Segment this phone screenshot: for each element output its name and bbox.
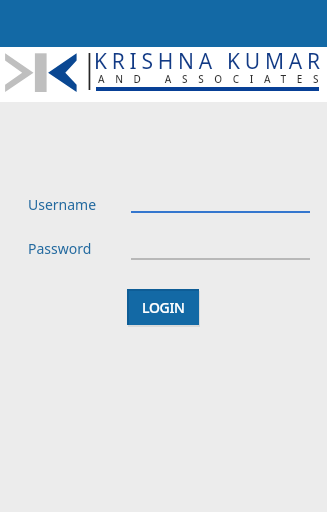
button[interactable]: Username (22, 190, 310, 220)
staticText: Password (28, 239, 92, 258)
staticText: LOGIN (142, 298, 185, 317)
staticText: AND ASSOCIATES (98, 72, 327, 86)
staticText: Username (28, 195, 97, 214)
staticText: KRISHNA KUMAR (94, 47, 325, 76)
button[interactable]: Password (22, 234, 310, 264)
button[interactable]: LOGIN (127, 289, 199, 325)
